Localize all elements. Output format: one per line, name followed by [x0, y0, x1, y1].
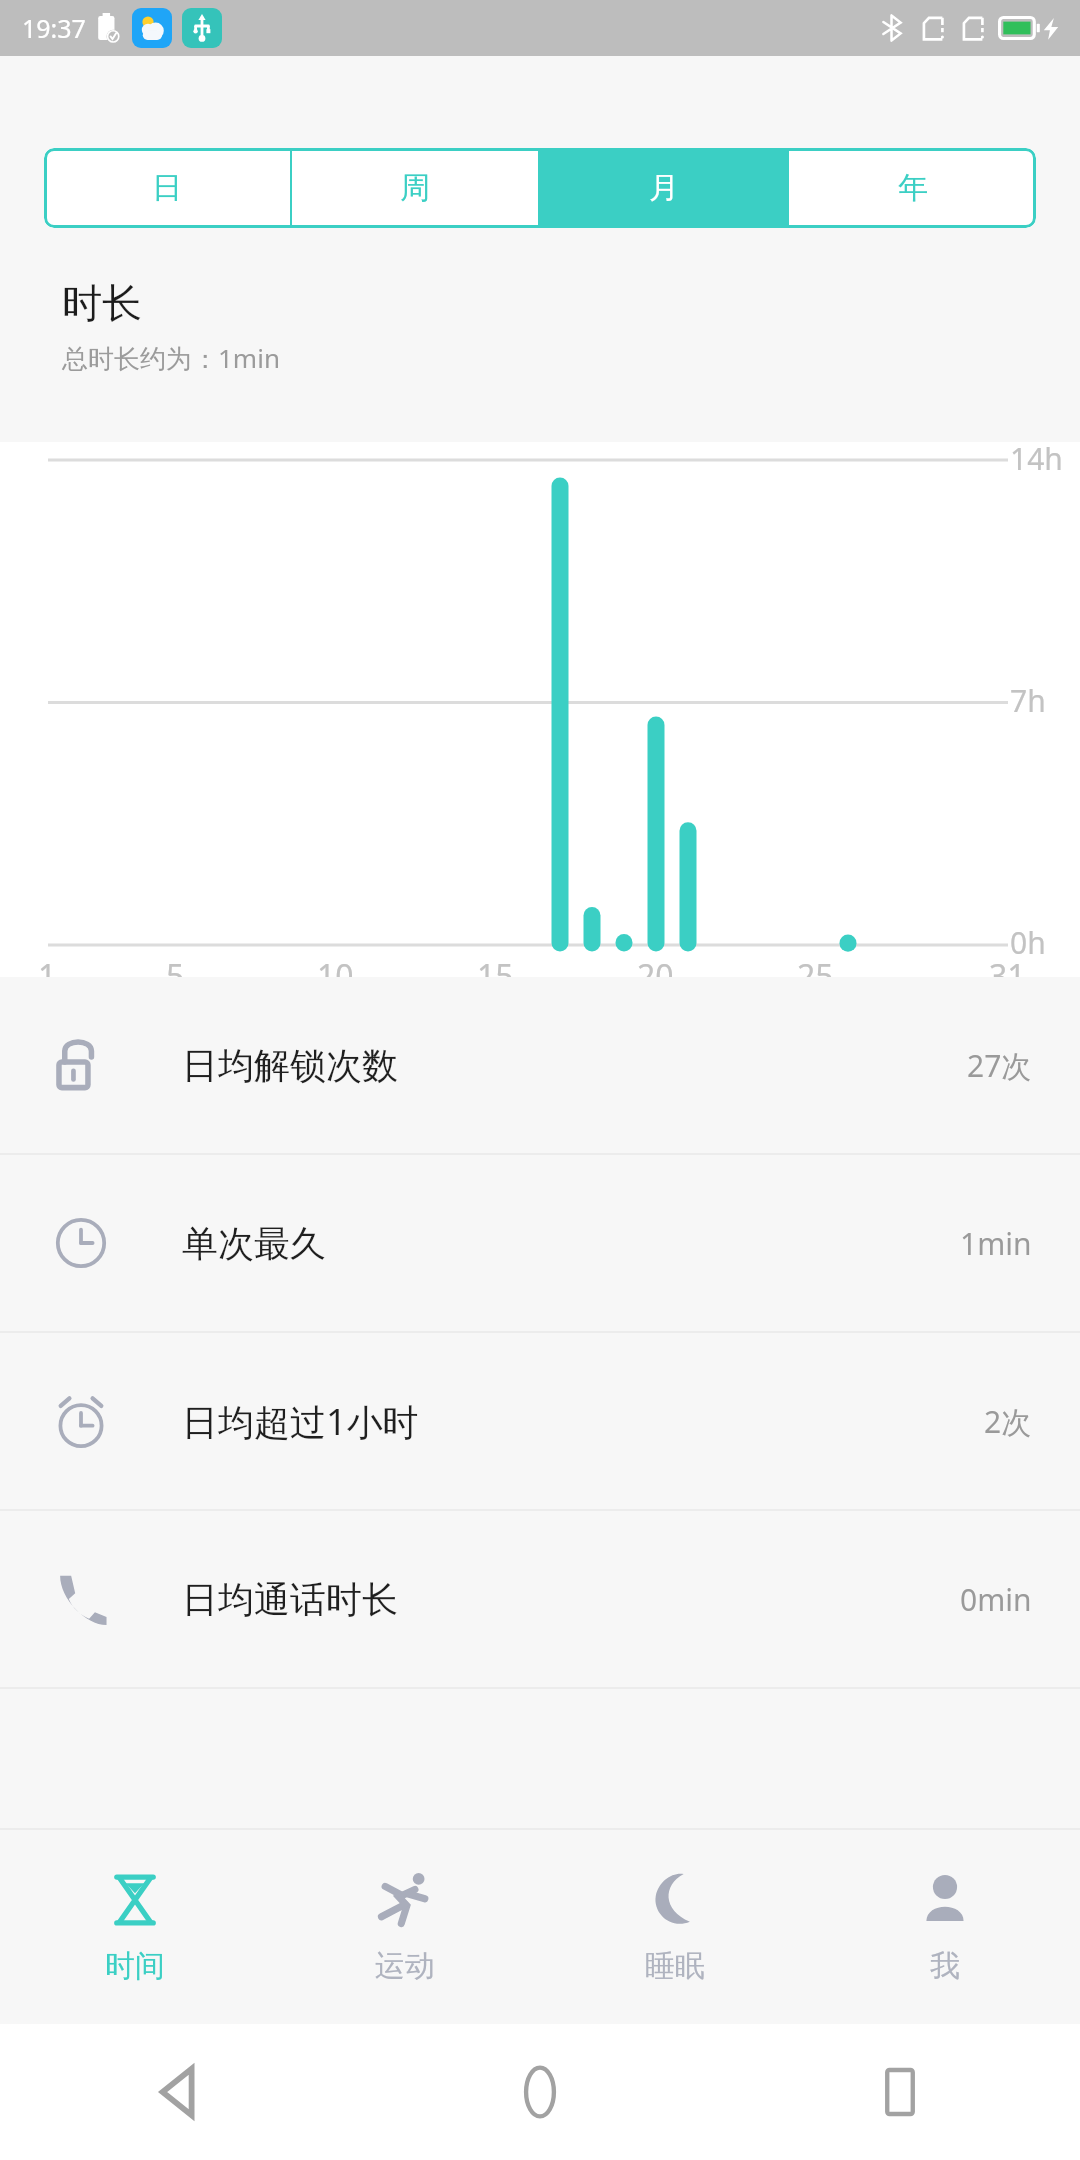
staticText: 日 — [152, 169, 182, 207]
staticText: 我 — [930, 1947, 960, 1985]
staticText: 睡眠 — [645, 1947, 705, 1985]
staticText: 15 — [477, 954, 514, 998]
button[interactable]: Home — [490, 2042, 590, 2142]
staticText: 周 — [400, 169, 430, 207]
staticText: 0min — [960, 1579, 1032, 1620]
staticText: 总时长约为：1min — [62, 340, 280, 376]
staticText: 2次 — [984, 1401, 1032, 1442]
button[interactable]: 年 — [789, 148, 1036, 228]
staticText: 年 — [898, 169, 928, 207]
staticText: 20 — [637, 954, 674, 998]
button[interactable]: 周 — [292, 148, 538, 228]
button[interactable]: 月 — [540, 148, 787, 228]
button[interactable]: 日均通话时长 — [0, 1511, 1080, 1687]
staticText: 27次 — [967, 1045, 1032, 1086]
staticText: 运动 — [375, 1947, 435, 1985]
staticText: 19:37 — [22, 11, 86, 45]
button[interactable]: 单次最久 — [0, 1155, 1080, 1331]
staticText: 时长 — [62, 278, 142, 328]
button[interactable]: Back — [130, 2042, 230, 2142]
button[interactable]: 日均超过1小时 — [0, 1333, 1080, 1509]
button[interactable]: 时间 — [0, 1830, 270, 2024]
button[interactable]: 睡眠 — [540, 1830, 810, 2024]
staticText: 1min — [960, 1223, 1032, 1264]
staticText: 日均解锁次数 — [182, 1043, 398, 1088]
staticText: 日均超过1小时 — [182, 1397, 419, 1446]
button[interactable]: 我 — [810, 1830, 1080, 2024]
staticText: 31 — [989, 954, 1026, 998]
button[interactable]: 运动 — [270, 1830, 540, 2024]
staticText: 5 — [166, 954, 185, 998]
staticText: 月 — [649, 169, 679, 207]
staticText: 单次最久 — [182, 1221, 326, 1266]
staticText: 日均通话时长 — [182, 1577, 398, 1622]
staticText: 7h — [1010, 680, 1046, 721]
staticText: 1 — [38, 954, 57, 998]
staticText: 时间 — [105, 1947, 165, 1985]
staticText: 0h — [1010, 922, 1046, 963]
button[interactable]: 日 — [44, 148, 290, 228]
staticText: 14h — [1010, 438, 1063, 479]
staticText: 10 — [317, 954, 354, 998]
staticText: 25 — [797, 954, 834, 998]
button[interactable]: 日均解锁次数 — [0, 977, 1080, 1153]
button[interactable]: Recent apps — [850, 2042, 950, 2142]
